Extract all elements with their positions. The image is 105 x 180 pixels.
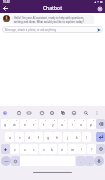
staticText: c bbox=[33, 147, 35, 152]
button[interactable]: n bbox=[58, 144, 67, 154]
button[interactable]: a bbox=[5, 132, 14, 142]
staticText: , bbox=[89, 159, 90, 164]
button[interactable]: x bbox=[20, 144, 29, 154]
button[interactable]: w bbox=[10, 119, 19, 129]
staticText: u bbox=[61, 122, 64, 127]
staticText: k bbox=[76, 135, 78, 140]
button[interactable]: g bbox=[44, 132, 53, 142]
staticText: q bbox=[4, 122, 7, 127]
button[interactable]: Symbols bbox=[1, 156, 11, 166]
button[interactable]: Settings bbox=[48, 109, 55, 116]
button[interactable]: b bbox=[48, 144, 57, 154]
button[interactable]: Emoji bbox=[11, 156, 20, 166]
button[interactable]: Hello! I'm your AI assistant, ready to h… bbox=[12, 15, 94, 24]
staticText: 10:30 bbox=[3, 0, 10, 4]
button[interactable]: Translate bbox=[59, 109, 66, 116]
button[interactable]: Back bbox=[0, 4, 11, 13]
staticText: y bbox=[52, 122, 54, 127]
staticText: . bbox=[80, 159, 81, 164]
button[interactable]: Shift bbox=[1, 144, 10, 154]
button[interactable]: y bbox=[48, 119, 57, 129]
button[interactable]: . bbox=[76, 156, 85, 166]
button[interactable]: v bbox=[39, 144, 48, 154]
button[interactable]: Backspace bbox=[96, 119, 105, 129]
button[interactable]: z bbox=[10, 144, 19, 154]
staticText: ? bbox=[91, 147, 93, 152]
button[interactable]: c bbox=[29, 144, 38, 154]
button[interactable]: e bbox=[20, 119, 29, 129]
button[interactable]: s bbox=[15, 132, 24, 142]
staticText: m bbox=[71, 147, 75, 152]
staticText: h bbox=[56, 135, 59, 140]
staticText: z bbox=[14, 147, 16, 152]
button[interactable]: i bbox=[68, 119, 77, 129]
staticText: 7 bbox=[64, 119, 66, 122]
button[interactable]: Message, attach a photo, or ask anything bbox=[2, 26, 103, 33]
button[interactable]: d bbox=[25, 132, 34, 142]
button[interactable]: Backspace bbox=[96, 144, 105, 154]
staticText: w bbox=[13, 122, 16, 127]
button[interactable]: r bbox=[29, 119, 38, 129]
staticText: 4 bbox=[35, 119, 37, 122]
staticText: i bbox=[72, 122, 73, 127]
staticText: b bbox=[51, 147, 54, 152]
button[interactable]: Microphone bbox=[94, 156, 104, 166]
button[interactable]: Settings bbox=[94, 4, 105, 13]
staticText: l bbox=[86, 135, 87, 140]
staticText: o bbox=[80, 122, 83, 127]
staticText: 8 bbox=[74, 119, 76, 122]
button[interactable]: Emoji bbox=[38, 109, 45, 116]
button[interactable]: , bbox=[85, 156, 94, 166]
staticText: v bbox=[43, 147, 45, 152]
staticText: t bbox=[43, 122, 45, 127]
button[interactable]: Clipboard bbox=[15, 109, 22, 116]
staticText: ! bbox=[81, 147, 82, 152]
staticText: 2 bbox=[16, 119, 18, 122]
staticText: ?123 bbox=[4, 160, 9, 163]
button[interactable]: More bbox=[93, 109, 100, 116]
button[interactable]: q bbox=[1, 119, 10, 129]
staticText: 0 bbox=[93, 119, 95, 122]
staticText: 3 bbox=[26, 119, 28, 122]
button[interactable]: Search bbox=[82, 109, 89, 116]
button[interactable]: Gboard bbox=[1, 109, 8, 116]
staticText: f bbox=[38, 135, 40, 140]
button[interactable]: o bbox=[77, 119, 86, 129]
button[interactable]: p bbox=[87, 119, 96, 129]
button[interactable]: f bbox=[34, 132, 43, 142]
staticText: e bbox=[24, 122, 26, 127]
staticText: 5 bbox=[45, 119, 47, 122]
staticText: p bbox=[90, 122, 93, 127]
staticText: d bbox=[28, 135, 31, 140]
staticText: 6 bbox=[54, 119, 56, 122]
button[interactable]: Send bbox=[95, 26, 102, 33]
staticText: a bbox=[9, 135, 11, 140]
button[interactable]: t bbox=[39, 119, 48, 129]
staticText: j bbox=[67, 135, 68, 140]
staticText: r bbox=[33, 122, 35, 127]
staticText: Chatbot bbox=[11, 5, 94, 12]
button[interactable]: GIF bbox=[25, 109, 32, 116]
staticText: 9 bbox=[83, 119, 85, 122]
button[interactable]: ? bbox=[87, 144, 96, 154]
button[interactable]: Enter bbox=[96, 132, 105, 142]
button[interactable]: ! bbox=[77, 144, 86, 154]
staticText: s bbox=[19, 135, 21, 140]
staticText: n bbox=[61, 147, 64, 152]
staticText: g bbox=[47, 135, 50, 140]
button[interactable]: j bbox=[63, 132, 72, 142]
button[interactable]: m bbox=[68, 144, 77, 154]
button[interactable]: u bbox=[58, 119, 67, 129]
staticText: 1 bbox=[7, 119, 9, 122]
staticText: x bbox=[24, 147, 26, 152]
button[interactable]: k bbox=[72, 132, 81, 142]
staticText: Message, attach a photo, or ask anything bbox=[5, 28, 95, 32]
button[interactable]: Sticker bbox=[70, 109, 77, 116]
button[interactable]: l bbox=[82, 132, 91, 142]
button[interactable]: h bbox=[53, 132, 62, 142]
staticText: Hello! I'm your AI assistant, ready to h… bbox=[14, 16, 92, 23]
